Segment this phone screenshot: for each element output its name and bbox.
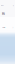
staticText: Hi — [2, 12, 5, 16]
staticText: 9:41 — [1, 5, 4, 6]
staticText: Activity — [1, 27, 5, 28]
staticText: › — [12, 26, 13, 29]
